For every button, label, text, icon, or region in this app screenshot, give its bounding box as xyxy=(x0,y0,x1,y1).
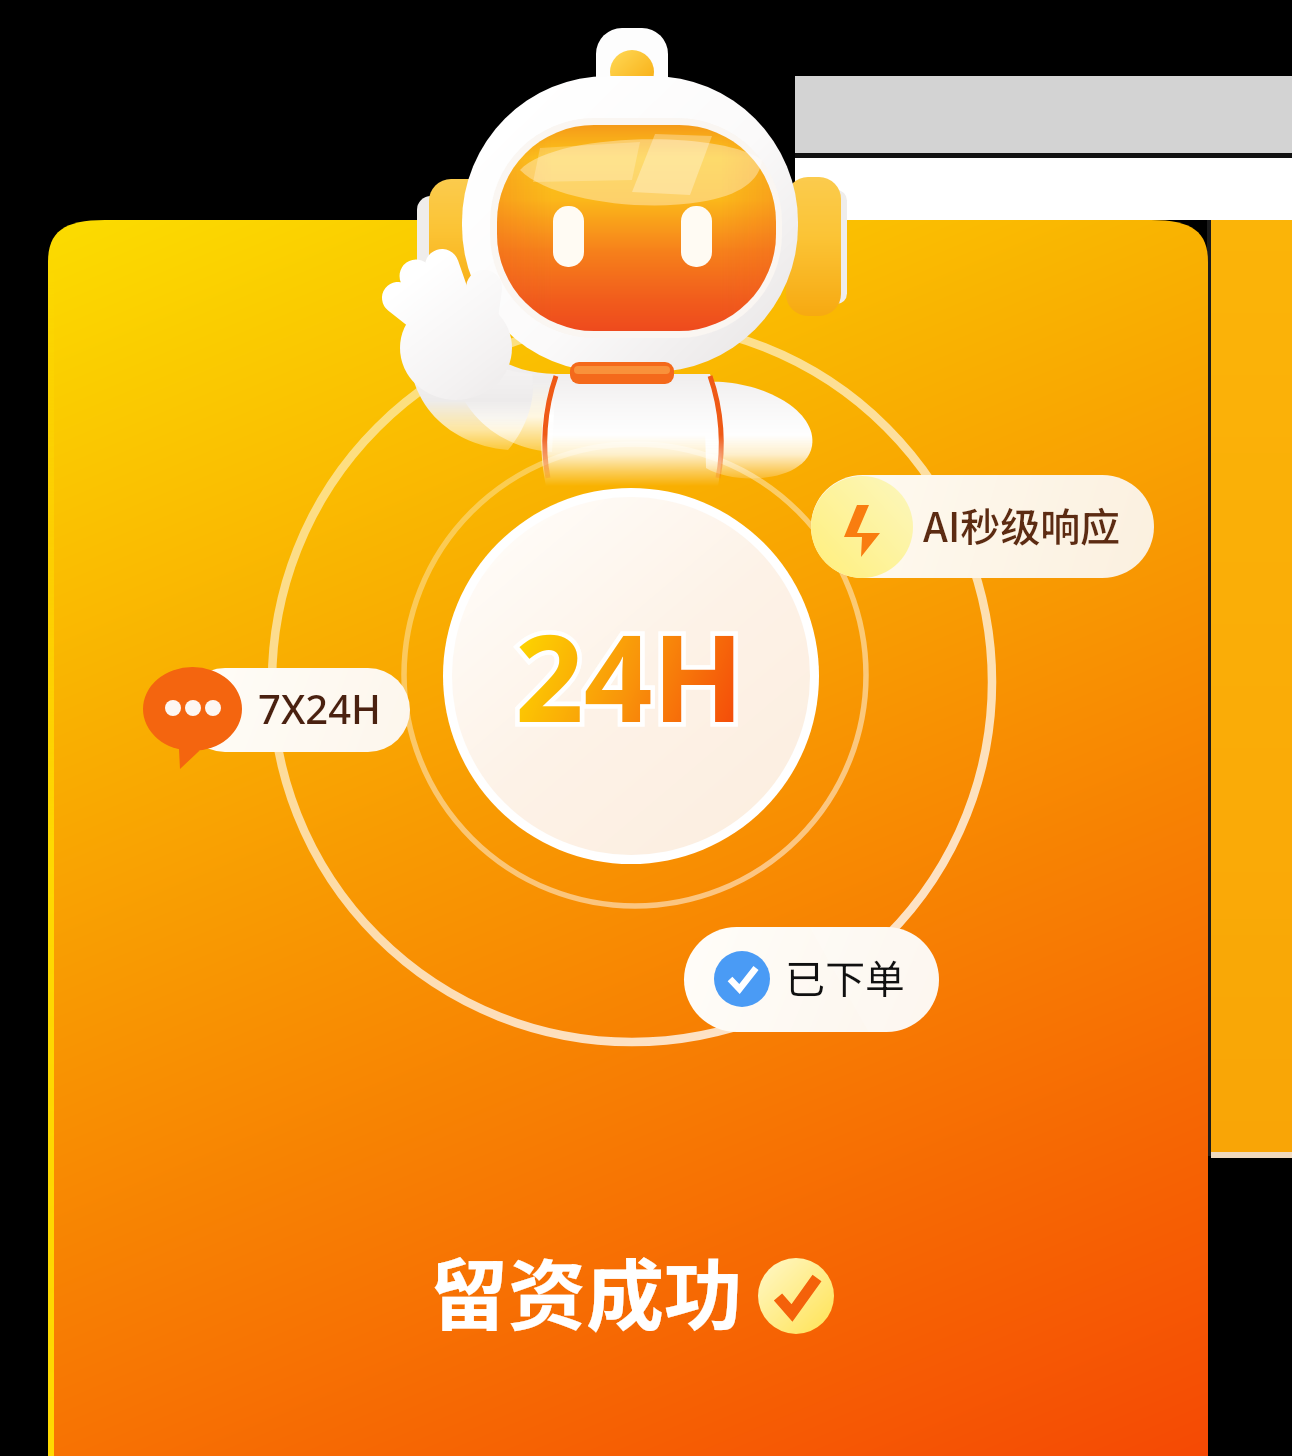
button[interactable]: 留资成功 xyxy=(0,0,1292,1456)
